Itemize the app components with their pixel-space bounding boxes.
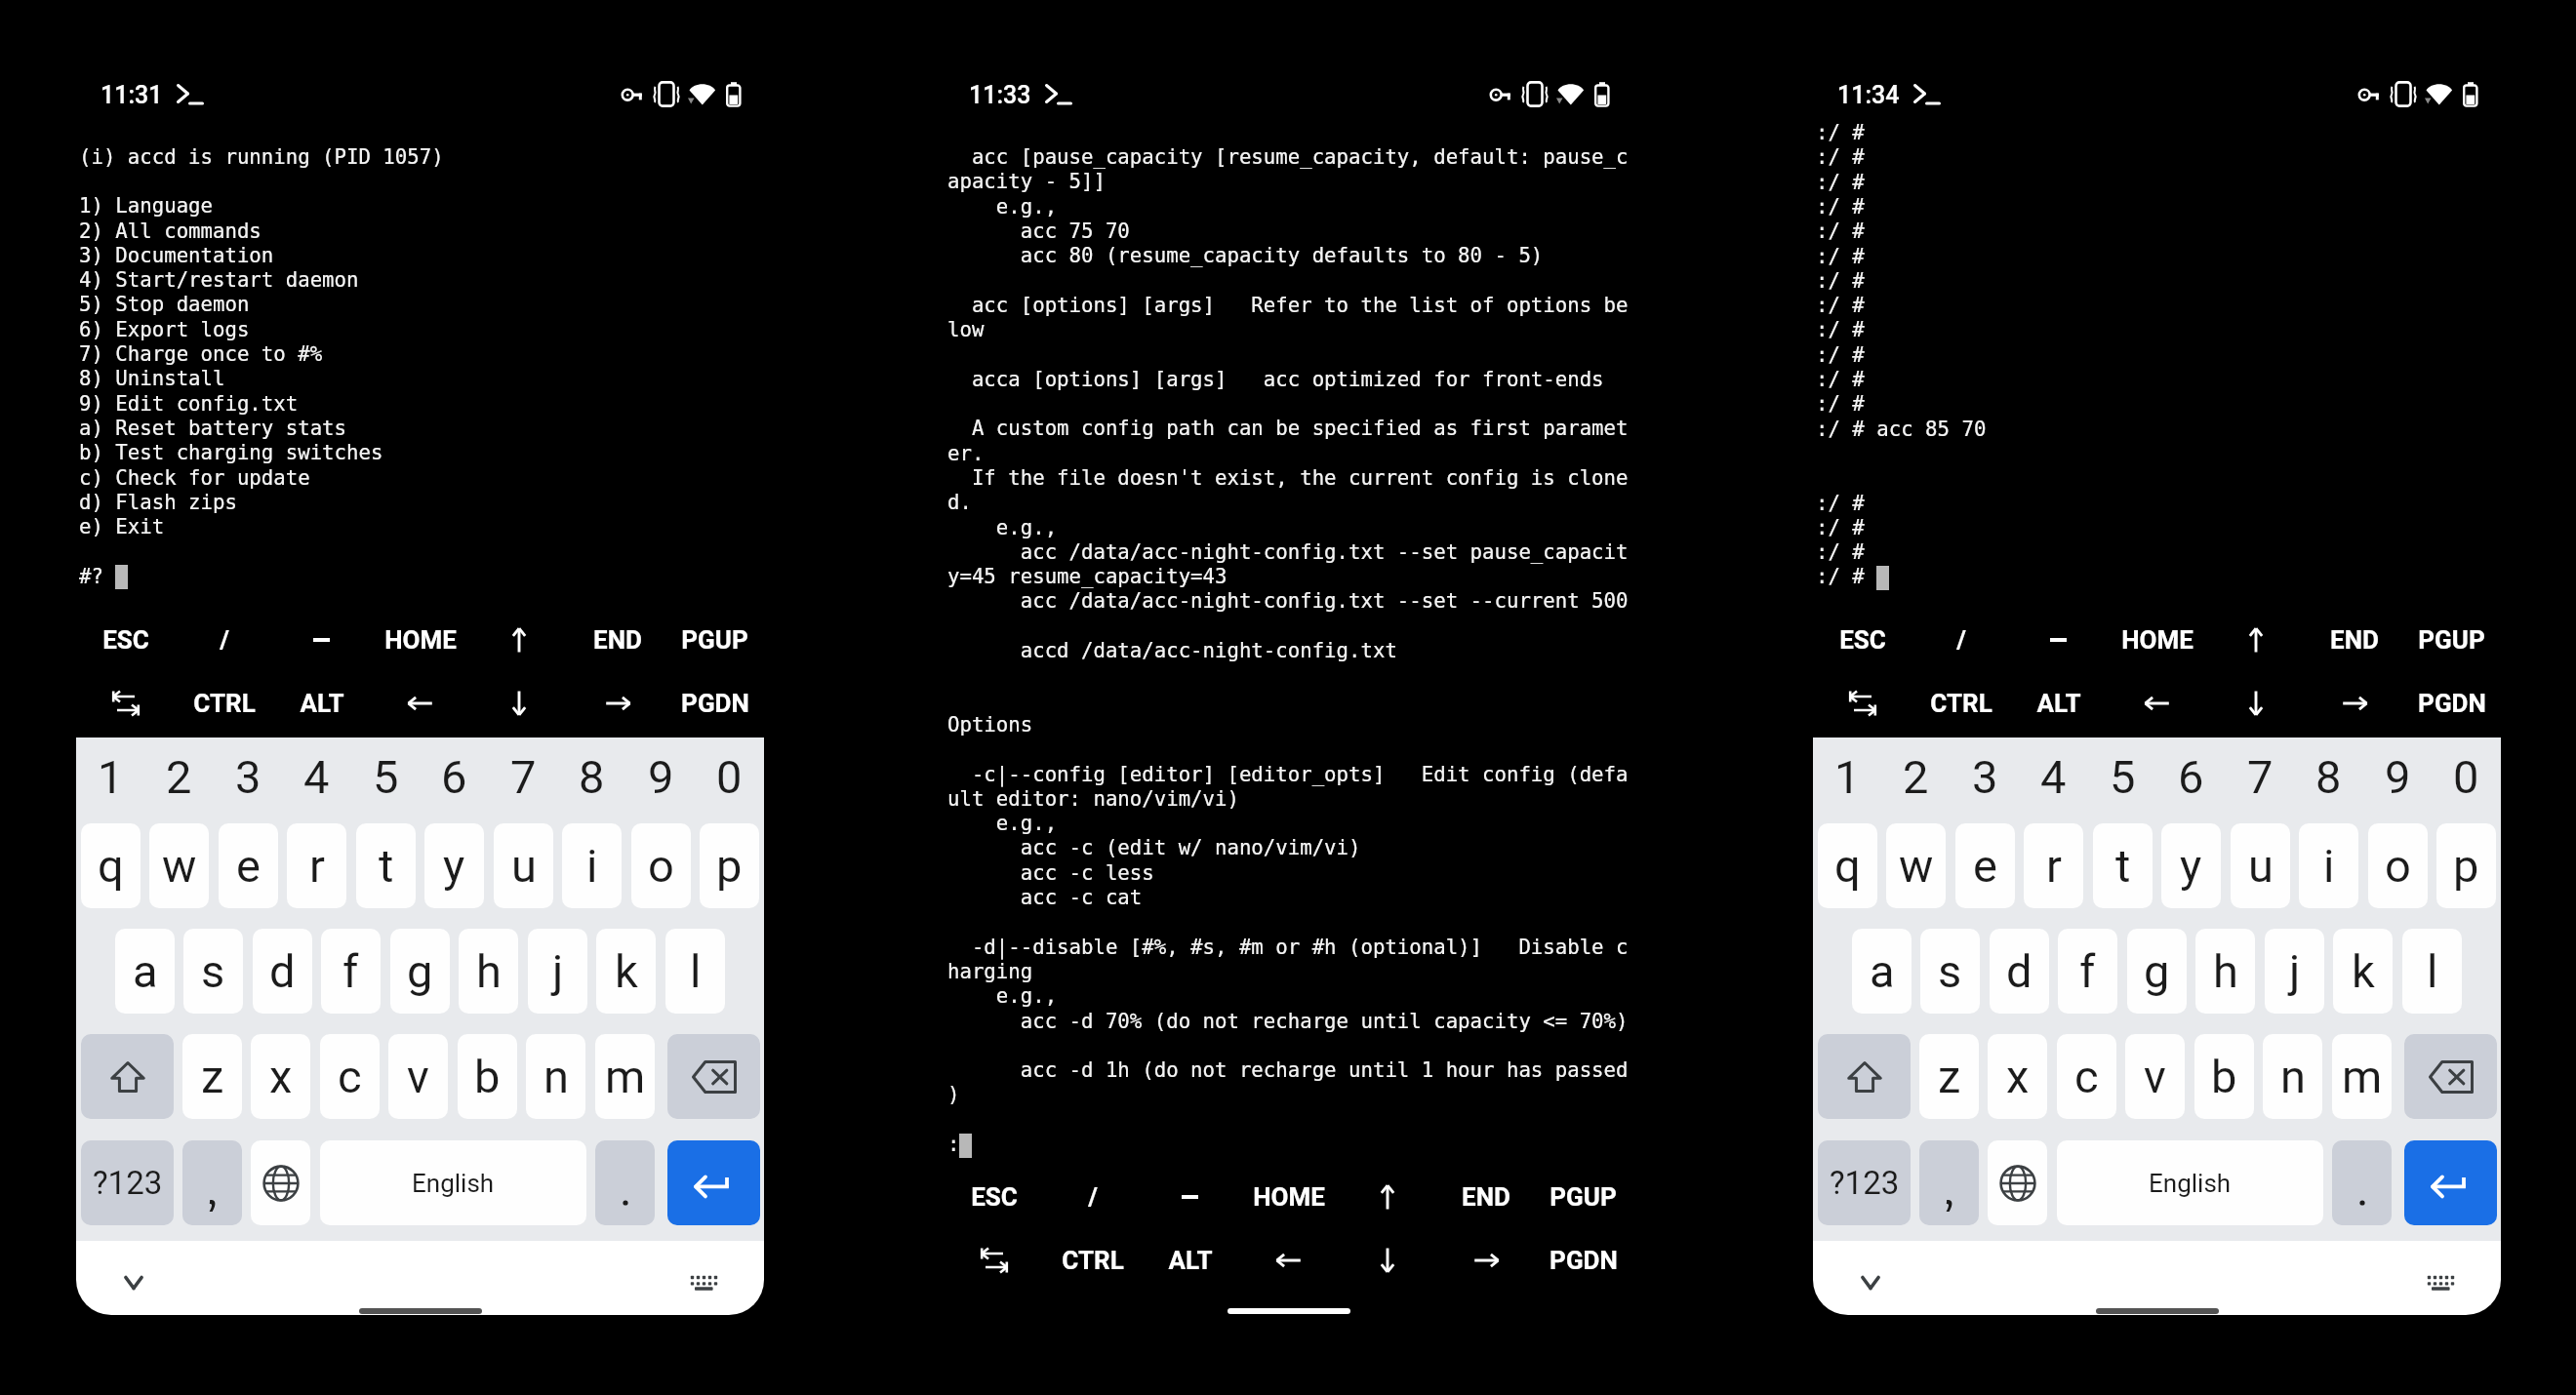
button[interactable]: f [2058, 929, 2117, 1014]
button[interactable]: Arrow down [1338, 1228, 1436, 1293]
button[interactable]: v [2125, 1034, 2185, 1119]
button[interactable]: 5 [356, 747, 416, 806]
button[interactable]: Dash [1141, 1165, 1239, 1229]
button[interactable]: 1 [1818, 747, 1877, 806]
button[interactable]: d [1990, 929, 2049, 1014]
button[interactable]: 8 [562, 747, 622, 806]
button[interactable]: n [526, 1034, 585, 1119]
button[interactable]: Backspace [667, 1034, 760, 1119]
button[interactable]: i [562, 823, 622, 908]
button[interactable] [1919, 1140, 1979, 1225]
button[interactable]: Change keyboard language [1988, 1140, 2047, 1225]
button[interactable]: h [2195, 929, 2255, 1014]
button[interactable]: 4 [287, 747, 346, 806]
button[interactable]: 9 [631, 747, 691, 806]
button[interactable]: u [494, 823, 553, 908]
button[interactable]: PGDN [665, 671, 764, 736]
button[interactable]: END [2305, 608, 2403, 672]
button[interactable]: ?123 [1818, 1140, 1911, 1225]
button[interactable]: m [2332, 1034, 2392, 1119]
button[interactable] [595, 1140, 655, 1225]
button[interactable]: Arrow up [1338, 1165, 1436, 1229]
button[interactable]: c [320, 1034, 380, 1119]
button[interactable]: PGUP [1534, 1165, 1632, 1229]
button[interactable]: w [1886, 823, 1946, 908]
button[interactable]: Tab [76, 671, 175, 736]
button[interactable]: Shift [81, 1034, 174, 1119]
button[interactable]: CTRL [175, 671, 273, 736]
button[interactable]: 0 [2436, 747, 2496, 806]
button[interactable]: u [2231, 823, 2290, 908]
button[interactable]: r [287, 823, 346, 908]
button[interactable]: o [631, 823, 691, 908]
button[interactable]: ESC [76, 608, 175, 672]
button[interactable]: 2 [149, 747, 209, 806]
button[interactable]: HOME [1239, 1165, 1338, 1229]
button[interactable]: y [2161, 823, 2221, 908]
button[interactable]: 2 [1886, 747, 1946, 806]
button[interactable]: 9 [2368, 747, 2428, 806]
button[interactable]: x [251, 1034, 310, 1119]
button[interactable]: English [2057, 1140, 2323, 1225]
button[interactable]: i [2299, 823, 2358, 908]
button[interactable]: Arrow down [469, 671, 568, 736]
button[interactable]: t [356, 823, 416, 908]
button[interactable]: w [149, 823, 209, 908]
button[interactable]: 1 [81, 747, 141, 806]
button[interactable]: Arrow right [2305, 671, 2403, 736]
button[interactable]: 3 [219, 747, 278, 806]
button[interactable]: Arrow left [1239, 1228, 1338, 1293]
button[interactable]: PGDN [2402, 671, 2501, 736]
button[interactable]: n [2263, 1034, 2322, 1119]
button[interactable]: t [2093, 823, 2153, 908]
button[interactable]: CTRL [1912, 671, 2010, 736]
button[interactable]: b [458, 1034, 517, 1119]
button[interactable]: Change keyboard language [251, 1140, 310, 1225]
button[interactable]: Tab [1813, 671, 1912, 736]
button[interactable]: PGUP [665, 608, 764, 672]
button[interactable]: a [1852, 929, 1912, 1014]
button[interactable]: 0 [700, 747, 759, 806]
button[interactable]: f [321, 929, 381, 1014]
button[interactable]: l [665, 929, 725, 1014]
button[interactable]: m [595, 1034, 655, 1119]
button[interactable]: Tab [945, 1228, 1043, 1293]
button[interactable]: Dash [2009, 608, 2108, 672]
button[interactable]: j [2265, 929, 2324, 1014]
button[interactable]: q [81, 823, 141, 908]
button[interactable]: 3 [1955, 747, 2015, 806]
button[interactable]: END [1436, 1165, 1535, 1229]
button[interactable]: ESC [945, 1165, 1043, 1229]
button[interactable]: Hide keyboard [111, 1262, 156, 1295]
button[interactable]: s [1920, 929, 1980, 1014]
button[interactable]: English [320, 1140, 586, 1225]
button[interactable]: Switch keyboard [2422, 1262, 2459, 1295]
button[interactable]: END [568, 608, 666, 672]
button[interactable]: / [1912, 608, 2010, 672]
button[interactable]: e [1955, 823, 2015, 908]
button[interactable]: k [2333, 929, 2393, 1014]
button[interactable]: d [253, 929, 312, 1014]
button[interactable]: c [2057, 1034, 2116, 1119]
button[interactable]: Arrow left [371, 671, 469, 736]
button[interactable]: Arrow up [469, 608, 568, 672]
button[interactable]: Arrow right [568, 671, 666, 736]
button[interactable]: Switch keyboard [685, 1262, 722, 1295]
button[interactable] [182, 1140, 242, 1225]
button[interactable]: Enter [667, 1140, 760, 1225]
button[interactable]: r [2024, 823, 2083, 908]
button[interactable]: q [1818, 823, 1877, 908]
button[interactable]: a [115, 929, 175, 1014]
button[interactable]: s [183, 929, 243, 1014]
button[interactable] [2332, 1140, 2392, 1225]
button[interactable]: g [2127, 929, 2187, 1014]
button[interactable]: CTRL [1043, 1228, 1142, 1293]
button[interactable]: h [459, 929, 518, 1014]
button[interactable]: z [182, 1034, 242, 1119]
button[interactable]: ?123 [81, 1140, 174, 1225]
button[interactable]: g [390, 929, 450, 1014]
button[interactable]: x [1988, 1034, 2047, 1119]
button[interactable]: Backspace [2404, 1034, 2497, 1119]
button[interactable]: 5 [2093, 747, 2153, 806]
button[interactable]: v [388, 1034, 448, 1119]
